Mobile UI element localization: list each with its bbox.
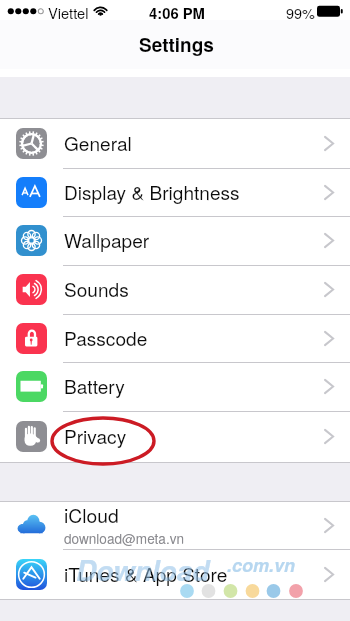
staticText: Battery [64,372,324,399]
button[interactable]: Privacy [0,411,350,462]
staticText: Viettel [48,2,89,22]
button[interactable]: Battery [0,362,350,411]
staticText: General [64,129,324,156]
staticText: 99% [286,2,316,22]
staticText: Download [76,550,210,590]
button[interactable]: Passcode [0,314,350,362]
staticText: Privacy [64,422,324,449]
staticText: iCloud [64,501,119,529]
button[interactable]: Display & Brightness [0,168,350,216]
staticText: Passcode [64,324,324,351]
button[interactable]: iTunes & App Store [0,549,350,599]
staticText: .com.vn [227,552,296,578]
button[interactable]: iCloud [0,501,350,549]
staticText: Sounds [64,275,324,302]
staticText: Wallpaper [64,226,324,253]
staticText: Settings [139,31,214,58]
staticText: 4:06 PM [149,2,205,22]
staticText: Display & Brightness [64,178,324,205]
staticText: download@meta.vn [64,528,185,547]
button[interactable]: General [0,118,350,168]
button[interactable]: Sounds [0,265,350,314]
staticText: iTunes & App Store [64,560,324,587]
button[interactable]: Wallpaper [0,216,350,265]
